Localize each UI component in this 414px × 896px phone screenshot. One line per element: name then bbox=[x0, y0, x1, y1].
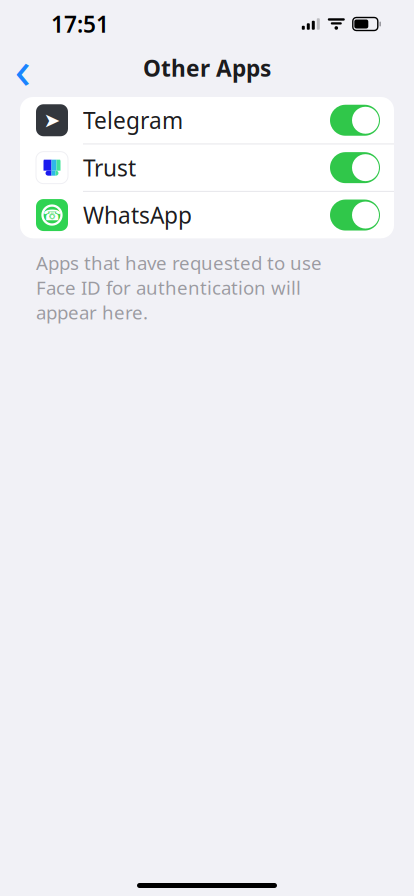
button[interactable]: ➤ bbox=[20, 97, 394, 144]
staticText: Telegram bbox=[83, 105, 183, 135]
button[interactable]: ☎ bbox=[20, 192, 394, 238]
staticText: Trust bbox=[83, 153, 136, 183]
staticText: Apps that have requested to use Face ID … bbox=[36, 250, 322, 325]
staticText: 17:51 bbox=[51, 9, 109, 39]
button[interactable]: Enabled bbox=[330, 105, 380, 136]
staticText: ☎ bbox=[43, 207, 61, 223]
staticText: ➤ bbox=[43, 109, 60, 132]
staticText: Other Apps bbox=[143, 53, 271, 83]
staticText: ‹ bbox=[14, 33, 31, 103]
button[interactable]: Trust bbox=[20, 144, 394, 192]
button[interactable]: Back bbox=[1, 46, 45, 90]
staticText: WhatsApp bbox=[83, 200, 192, 230]
button[interactable]: Enabled bbox=[330, 152, 380, 183]
button[interactable]: Enabled bbox=[330, 200, 380, 231]
